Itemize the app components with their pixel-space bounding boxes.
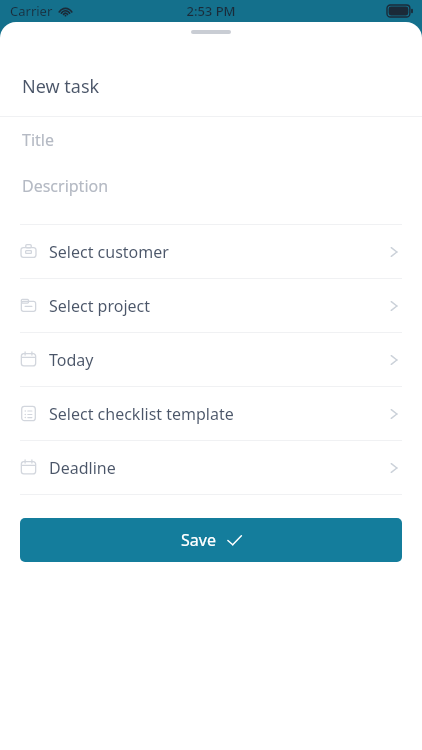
staticText: Select project [49, 295, 150, 317]
button[interactable]: Today [0, 333, 422, 386]
button[interactable]: Save [20, 518, 402, 562]
button[interactable]: Description [0, 163, 422, 209]
button[interactable]: Select project [0, 279, 422, 332]
staticText: Carrier [10, 2, 53, 20]
staticText: Description [22, 175, 109, 197]
staticText: Title [22, 129, 54, 151]
button[interactable]: Select checklist template [0, 387, 422, 440]
staticText: New task [22, 74, 100, 99]
other: Open Today [386, 352, 402, 368]
staticText: Deadline [49, 457, 116, 479]
staticText: 2:53 PM [186, 2, 236, 20]
other: Open Select checklist template [386, 406, 402, 422]
button[interactable]: Title [0, 117, 422, 163]
other: Open Select customer [386, 244, 402, 260]
staticText: Save [181, 529, 216, 551]
other: Open Deadline [386, 460, 402, 476]
staticText: Select checklist template [49, 403, 234, 425]
staticText: Select customer [49, 241, 169, 263]
button[interactable]: Deadline [0, 441, 422, 494]
other: Open Select project [386, 298, 402, 314]
staticText: Today [49, 349, 94, 371]
button[interactable]: Select customer [0, 225, 422, 278]
